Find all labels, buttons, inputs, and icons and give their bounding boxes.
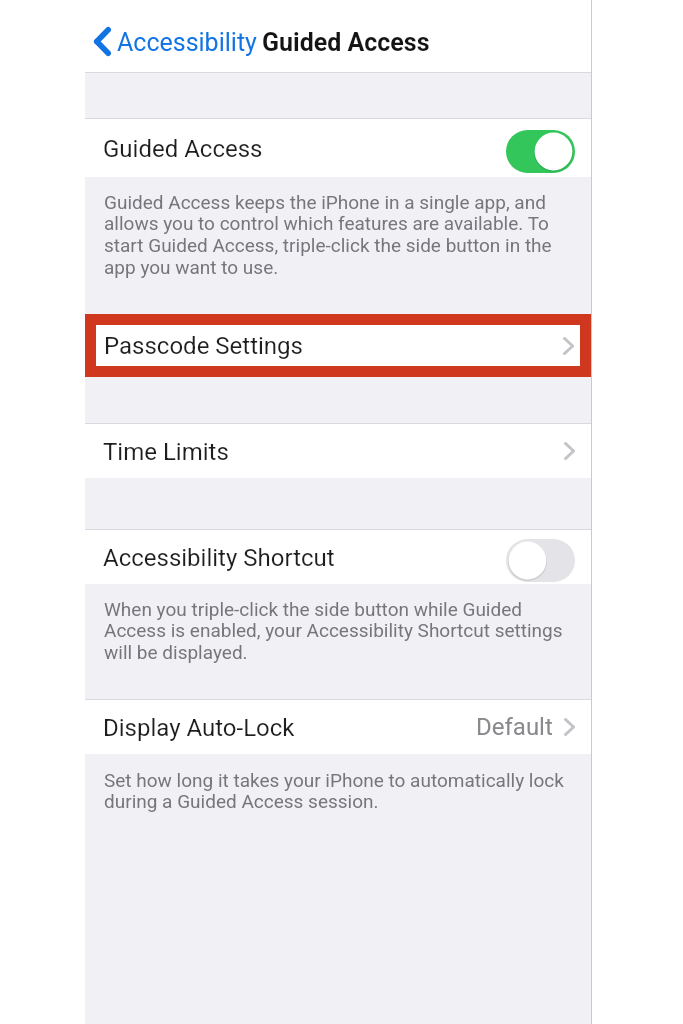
staticText: Guided Access	[103, 135, 263, 163]
button[interactable]: Accessibility Shortcut off	[506, 539, 575, 582]
staticText: Passcode Settings	[104, 332, 303, 360]
staticText: Display Auto-Lock	[103, 714, 295, 742]
button[interactable]: Guided Access	[85, 119, 591, 177]
staticText: Default	[476, 713, 553, 741]
staticText: Guided Access	[262, 28, 430, 57]
button[interactable]: Back to Accessibility	[85, 26, 260, 61]
staticText: Accessibility Shortcut	[103, 544, 335, 572]
staticText: When you triple-click the side button wh…	[104, 598, 564, 664]
staticText: Time Limits	[103, 438, 229, 466]
button[interactable]: Passcode Settings	[96, 325, 580, 366]
staticText: Set how long it takes your iPhone to aut…	[104, 769, 564, 813]
button[interactable]: Accessibility Shortcut	[85, 530, 591, 584]
staticText: Accessibility	[117, 28, 257, 57]
button[interactable]: Time Limits	[85, 424, 591, 478]
button[interactable]: Display Auto-Lock	[85, 700, 591, 754]
staticText: Guided Access keeps the iPhone in a sing…	[104, 191, 564, 279]
button[interactable]: Guided Access on	[506, 130, 575, 173]
